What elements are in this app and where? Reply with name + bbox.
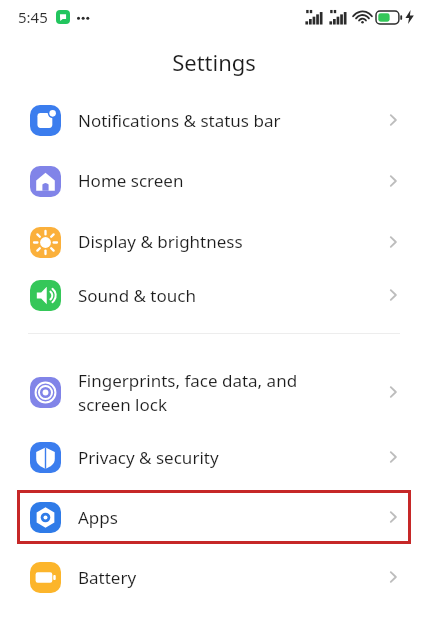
button[interactable]: Sound & touch: [0, 272, 428, 318]
staticText: Privacy & security: [78, 446, 219, 469]
button[interactable]: Display & brightness: [0, 211, 428, 272]
other: Open: [382, 231, 404, 253]
other: Open: [382, 170, 404, 192]
other: Open: [382, 506, 404, 528]
button[interactable]: Home screen: [0, 150, 428, 211]
staticText: Sound & touch: [78, 284, 196, 307]
staticText: Notifications & status bar: [78, 109, 281, 132]
button[interactable]: Fingerprints, face data, and screen lock: [0, 356, 428, 428]
button[interactable]: Privacy & security: [0, 428, 428, 486]
staticText: Fingerprints, face data, and screen lock: [78, 369, 298, 416]
other: Open: [382, 446, 404, 468]
staticText: 5:45: [18, 7, 48, 27]
button[interactable]: Battery: [0, 548, 428, 606]
other: Open: [382, 566, 404, 588]
staticText: Home screen: [78, 169, 184, 192]
button[interactable]: Apps: [20, 493, 408, 541]
other: Open: [382, 381, 404, 403]
other: Open: [382, 109, 404, 131]
staticText: Display & brightness: [78, 230, 243, 253]
staticText: Apps: [78, 506, 118, 529]
button[interactable]: Notifications & status bar: [0, 90, 428, 150]
staticText: Settings: [172, 47, 256, 77]
staticText: Battery: [78, 566, 137, 589]
other: Open: [382, 284, 404, 306]
